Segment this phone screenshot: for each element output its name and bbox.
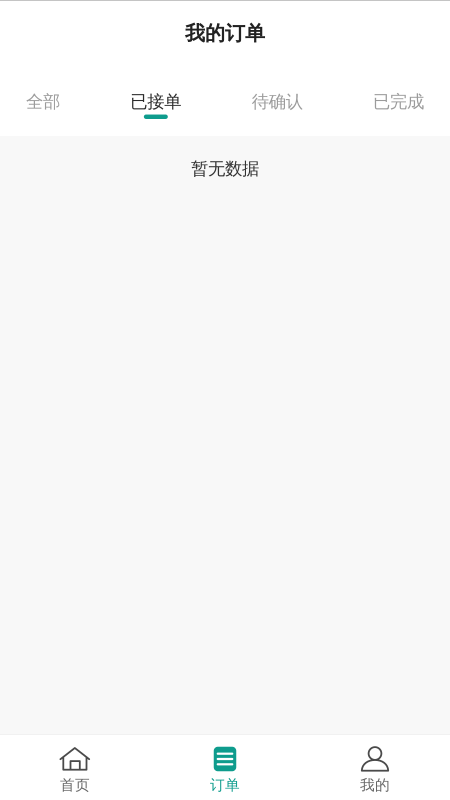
button[interactable]: 已完成 (373, 91, 424, 119)
staticText: 我的 (360, 776, 390, 794)
button[interactable]: 我的 (300, 735, 450, 800)
staticText: 暂无数据 (191, 158, 259, 179)
staticText: 已完成 (373, 91, 424, 112)
button[interactable]: 首页 (0, 735, 150, 800)
staticText: 已接单 (130, 91, 181, 112)
button[interactable]: 待确认 (252, 91, 303, 119)
button[interactable]: 全部 (26, 91, 60, 119)
button[interactable]: 订单 (150, 735, 300, 800)
staticText: 首页 (60, 776, 90, 794)
staticText: 待确认 (252, 91, 303, 112)
staticText: 订单 (210, 776, 240, 794)
button[interactable]: 已接单 (130, 91, 181, 119)
staticText: 我的订单 (185, 21, 265, 46)
staticText: 全部 (26, 91, 60, 112)
